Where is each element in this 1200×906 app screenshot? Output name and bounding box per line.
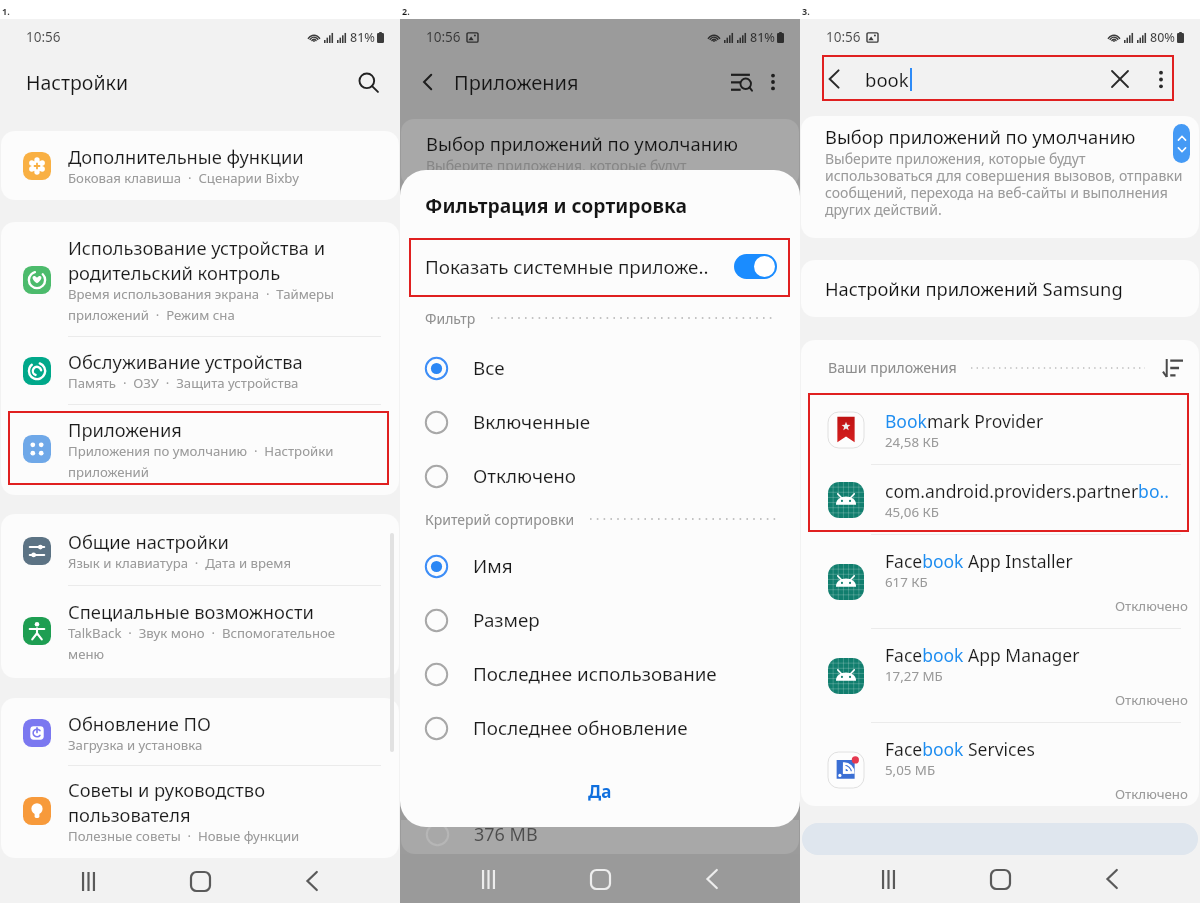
staticText: Критерий сортировки: [425, 510, 575, 529]
staticText: Дополнительные функции: [68, 144, 304, 169]
button[interactable]: Советы и руководство пользователя: [1, 766, 399, 858]
button[interactable]: Recents: [466, 857, 510, 901]
button[interactable]: Приложения: [1, 405, 399, 495]
button[interactable]: Отключено: [400, 449, 800, 503]
staticText: Обновление ПО: [68, 711, 211, 736]
staticText: 17,27 МБ: [885, 667, 943, 685]
button[interactable]: Facebook App Manager: [801, 629, 1199, 722]
button[interactable]: Back: [290, 859, 334, 903]
staticText: 81%: [350, 29, 375, 46]
staticText: Обслуживание устройства: [68, 349, 303, 374]
staticText: Специальные возможности: [68, 599, 314, 624]
staticText: Отключено: [1115, 597, 1188, 615]
button[interactable]: Последнее использование: [400, 647, 800, 701]
staticText: Facebook App Manager: [885, 643, 1080, 667]
button[interactable]: Home: [578, 857, 622, 901]
staticText: Использование устройства и родительский …: [68, 235, 345, 285]
button[interactable]: Все: [400, 341, 800, 395]
staticText: 24,58 КБ: [885, 433, 939, 451]
staticText: 45,06 КБ: [885, 503, 939, 521]
staticText: Facebook App Installer: [885, 549, 1073, 573]
staticText: 5,05 МБ: [885, 761, 936, 779]
staticText: Bookmark Provider: [885, 409, 1044, 433]
button[interactable]: Recents: [866, 857, 910, 901]
button[interactable]: com.android.providers.partnerbo..: [801, 465, 1199, 534]
button[interactable]: Search apps: [724, 65, 758, 99]
button[interactable]: Включенные: [400, 395, 800, 449]
button[interactable]: Да: [400, 764, 800, 818]
button[interactable]: Clear: [1102, 61, 1138, 97]
button[interactable]: Показать системные приложе..: [400, 237, 800, 296]
button[interactable]: Home: [978, 857, 1022, 901]
button[interactable]: Facebook App Installer: [801, 535, 1199, 628]
staticText: Приложения по умолчанию · Настройки прил…: [68, 442, 345, 481]
staticText: Общие настройки: [68, 529, 229, 554]
button[interactable]: Bookmark Provider: [801, 395, 1199, 464]
staticText: Боковая клавиша · Сценарии Bixby: [68, 169, 299, 187]
staticText: Последнее обновление: [473, 715, 688, 741]
staticText: 2.: [402, 5, 410, 17]
button[interactable]: More options: [1148, 66, 1174, 92]
button[interactable]: Recents: [66, 859, 110, 903]
staticText: 80%: [1150, 29, 1175, 46]
staticText: Отключено: [1115, 691, 1188, 709]
button[interactable]: Настройки приложений Samsung: [801, 260, 1199, 317]
button[interactable]: Обновление ПО: [1, 698, 399, 765]
staticText: Последнее использование: [473, 661, 717, 687]
button[interactable]: Back: [690, 857, 734, 901]
staticText: Включенные: [473, 409, 591, 435]
staticText: Выбор приложений по умолчанию: [825, 124, 1136, 149]
staticText: Отключено: [473, 463, 577, 489]
staticText: 617 КБ: [885, 573, 928, 591]
button[interactable]: Имя: [400, 539, 800, 593]
button[interactable]: Использование устройства и родительский …: [1, 222, 399, 336]
staticText: TalkBack · Звук моно · Вспомогательное м…: [68, 624, 345, 663]
staticText: Время использования экрана · Таймеры при…: [68, 285, 345, 324]
staticText: 3.: [802, 5, 810, 17]
staticText: Показать системные приложе..: [425, 254, 734, 280]
staticText: Facebook Services: [885, 737, 1035, 761]
staticText: 10:56: [826, 28, 861, 46]
staticText: 10:56: [426, 28, 461, 46]
button[interactable]: Специальные возможности: [1, 586, 399, 678]
button[interactable]: Дополнительные функции: [1, 131, 399, 200]
button[interactable]: Общие настройки: [1, 514, 399, 585]
staticText: Все: [473, 355, 505, 381]
staticText: Полезные советы · Новые функции: [68, 827, 300, 845]
staticText: 376 MB: [474, 822, 538, 847]
staticText: Выбор приложений по умолчанию: [426, 131, 739, 156]
staticText: Фильтрация и сортировка: [425, 192, 687, 218]
staticText: 1.: [2, 5, 10, 17]
button[interactable]: Home: [178, 859, 222, 903]
staticText: Приложения: [68, 417, 182, 442]
staticText: Приложения: [454, 69, 579, 96]
button[interactable]: Search: [348, 62, 388, 102]
staticText: com.android.providers.partnerbo..: [885, 479, 1169, 503]
button[interactable]: Back: [1090, 857, 1134, 901]
staticText: Отключено: [1115, 785, 1188, 803]
button[interactable]: Back: [816, 61, 852, 97]
staticText: 10:56: [26, 28, 61, 46]
staticText: Язык и клавиатура · Дата и время: [68, 554, 292, 572]
staticText: Размер: [473, 607, 540, 633]
staticText: Память · ОЗУ · Защита устройства: [68, 374, 299, 392]
button[interactable]: Последнее обновление: [400, 701, 800, 755]
staticText: Выберите приложения, которые будут испол…: [825, 149, 1185, 219]
staticText: Советы и руководство пользователя: [68, 777, 345, 827]
staticText: Ваши приложения: [828, 358, 957, 377]
staticText: Настройки приложений Samsung: [825, 276, 1123, 301]
button[interactable]: Обслуживание устройства: [1, 337, 399, 404]
staticText: book: [865, 67, 909, 92]
staticText: Настройки: [26, 69, 129, 96]
button[interactable]: More options: [758, 67, 788, 97]
staticText: Фильтр: [425, 309, 476, 328]
staticText: Да: [588, 780, 612, 803]
button[interactable]: Размер: [400, 593, 800, 647]
staticText: 81%: [750, 29, 775, 46]
staticText: Загрузка и установка: [68, 736, 203, 754]
staticText: Выберите приложения, которые будут: [426, 156, 687, 175]
staticText: Имя: [473, 553, 513, 579]
button[interactable]: Facebook Services: [801, 723, 1199, 806]
button[interactable]: Sort: [1157, 353, 1187, 383]
